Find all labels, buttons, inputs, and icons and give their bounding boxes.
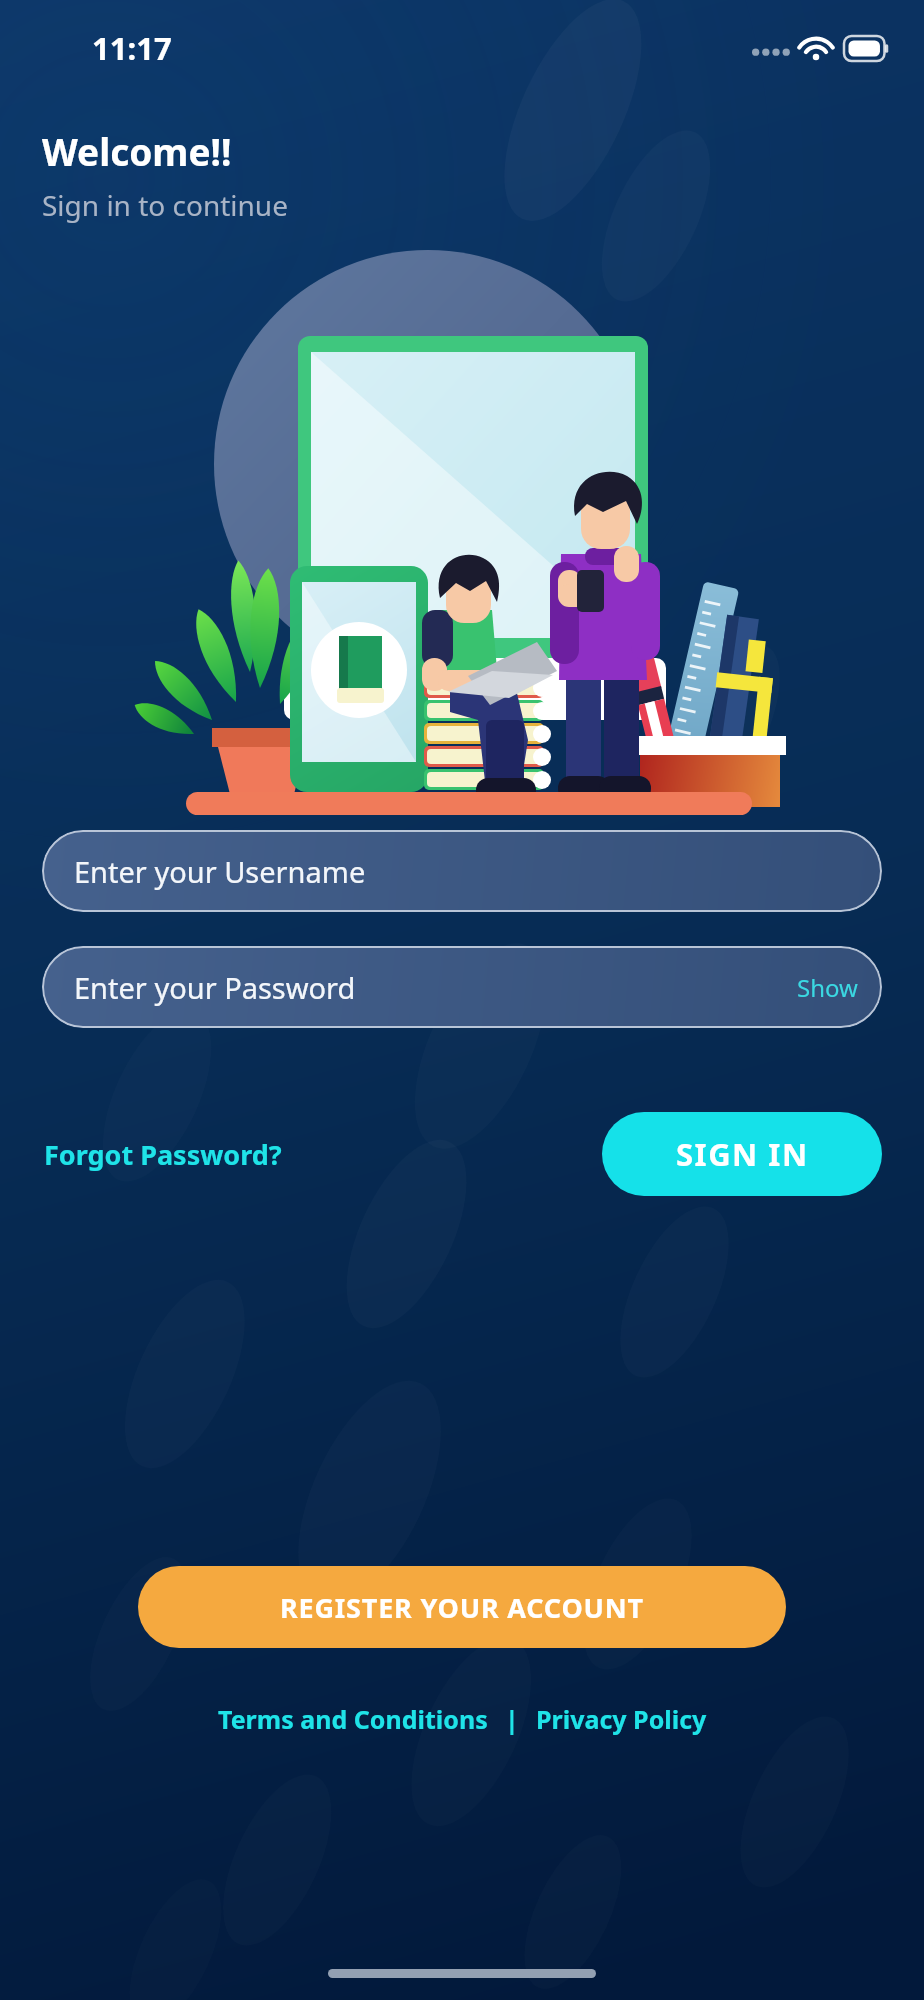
staticText: Enter your Password [74,968,356,1007]
button[interactable]: Show [773,961,882,1014]
staticText: Welcome!! [42,126,232,176]
staticText: Show [797,971,858,1004]
staticText: REGISTER YOUR ACCOUNT [280,1589,644,1626]
other: Battery [844,36,890,61]
staticText: Forgot Password? [44,1136,282,1173]
button[interactable]: Forgot Password? [42,1128,284,1181]
staticText: SIGN IN [676,1133,809,1175]
button[interactable]: Enter your Password [42,946,882,1028]
staticText: Enter your Username [74,852,366,891]
button[interactable]: REGISTER YOUR ACCOUNT [138,1566,786,1648]
button[interactable]: Privacy Policy [532,1698,711,1740]
staticText: 11:17 [92,27,172,69]
staticText: Terms and Conditions [218,1702,488,1736]
button[interactable]: SIGN IN [602,1112,882,1196]
button[interactable]: Enter your Username [42,830,882,912]
staticText: | [492,1702,532,1736]
staticText: Privacy Policy [536,1702,707,1736]
other: Wi-Fi [800,35,832,61]
staticText: Sign in to continue [42,186,288,224]
button[interactable]: Terms and Conditions [214,1698,492,1740]
